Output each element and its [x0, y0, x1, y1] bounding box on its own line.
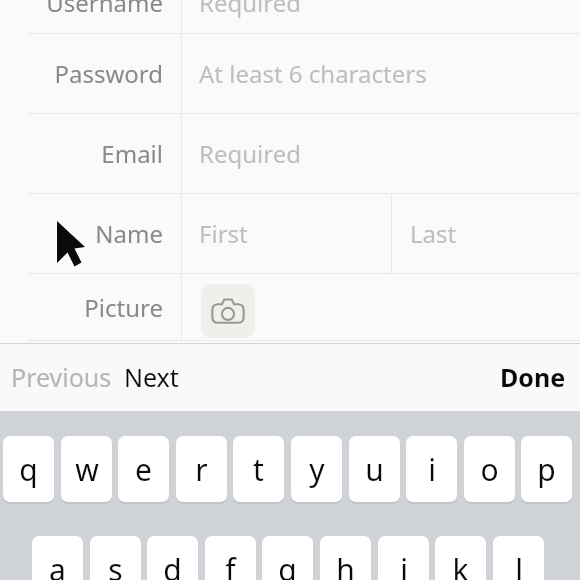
staticText: i — [428, 449, 436, 490]
button[interactable]: k — [435, 536, 486, 580]
staticText: Email — [101, 137, 163, 170]
button[interactable]: e — [118, 436, 169, 502]
button[interactable]: h — [320, 536, 371, 580]
button[interactable]: Previous — [0, 352, 118, 402]
button[interactable]: d — [147, 536, 198, 580]
staticText: Required — [199, 0, 301, 19]
staticText: Previous — [11, 360, 112, 394]
button[interactable]: u — [349, 436, 400, 502]
staticText: t — [253, 449, 264, 490]
staticText: Name — [95, 217, 163, 250]
staticText: r — [195, 449, 208, 490]
staticText: d — [163, 549, 182, 580]
staticText: First — [199, 217, 248, 250]
staticText: a — [49, 549, 66, 580]
button[interactable]: Done — [486, 352, 580, 402]
button[interactable]: s — [90, 536, 141, 580]
staticText: Password — [54, 57, 163, 90]
staticText: y — [309, 449, 325, 490]
button[interactable]: Last — [392, 194, 580, 273]
button[interactable]: Next — [118, 352, 185, 402]
button[interactable]: Take picture — [201, 284, 255, 338]
button[interactable]: a — [32, 536, 83, 580]
button[interactable]: y — [291, 436, 342, 502]
staticText: g — [278, 549, 297, 580]
staticText: Done — [500, 360, 566, 394]
button[interactable]: o — [464, 436, 515, 502]
button[interactable]: i — [406, 436, 457, 502]
staticText: f — [225, 549, 236, 580]
staticText: q — [19, 449, 38, 490]
staticText: o — [480, 449, 499, 490]
staticText: At least 6 characters — [199, 57, 427, 90]
staticText: w — [75, 449, 99, 490]
button[interactable]: Password — [0, 34, 580, 113]
staticText: h — [336, 549, 355, 580]
button[interactable]: p — [521, 436, 572, 502]
staticText: s — [108, 549, 123, 580]
button[interactable]: First — [181, 194, 391, 273]
button[interactable]: Username — [0, 0, 580, 33]
staticText: Next — [124, 360, 179, 394]
staticText: j — [400, 549, 408, 580]
staticText: l — [515, 549, 523, 580]
button[interactable]: Email — [0, 114, 580, 193]
button[interactable]: t — [233, 436, 284, 502]
staticText: Username — [46, 0, 163, 19]
button[interactable]: l — [493, 536, 544, 580]
staticText: k — [452, 549, 469, 580]
staticText: Required — [199, 137, 301, 170]
staticText: p — [537, 449, 556, 490]
button[interactable]: f — [205, 536, 256, 580]
button[interactable]: w — [61, 436, 112, 502]
staticText: Picture — [84, 291, 163, 324]
staticText: u — [365, 449, 384, 490]
staticText: Last — [410, 217, 457, 250]
staticText: e — [135, 449, 152, 490]
button[interactable]: j — [378, 536, 429, 580]
button[interactable]: r — [176, 436, 227, 502]
button[interactable]: g — [262, 536, 313, 580]
button[interactable]: q — [3, 436, 54, 502]
